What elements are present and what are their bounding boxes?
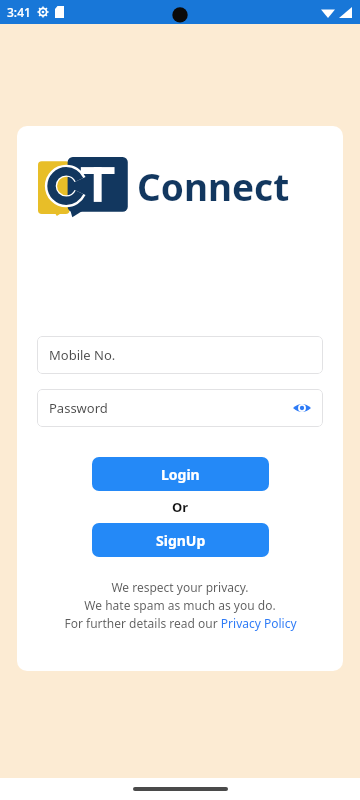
staticText: We respect your privacy. bbox=[111, 579, 249, 595]
staticText: For further details read our Privacy Pol… bbox=[64, 615, 297, 631]
button[interactable]: Show password bbox=[291, 397, 313, 419]
button[interactable]: SignUp bbox=[92, 523, 269, 557]
button[interactable]: For further details read our Privacy Pol… bbox=[64, 615, 297, 631]
button[interactable]: Login bbox=[92, 457, 269, 491]
staticText: We hate spam as much as you do. bbox=[84, 597, 276, 613]
button[interactable]: Mobile No. bbox=[37, 336, 323, 374]
staticText: Password bbox=[49, 399, 108, 417]
button[interactable]: Password bbox=[37, 389, 323, 427]
staticText: 3:41 bbox=[7, 4, 31, 20]
staticText: Mobile No. bbox=[49, 346, 116, 364]
staticText: Connect bbox=[137, 161, 290, 211]
staticText: Or bbox=[172, 498, 189, 516]
staticText: SignUp bbox=[156, 531, 206, 550]
staticText: Login bbox=[161, 465, 200, 484]
